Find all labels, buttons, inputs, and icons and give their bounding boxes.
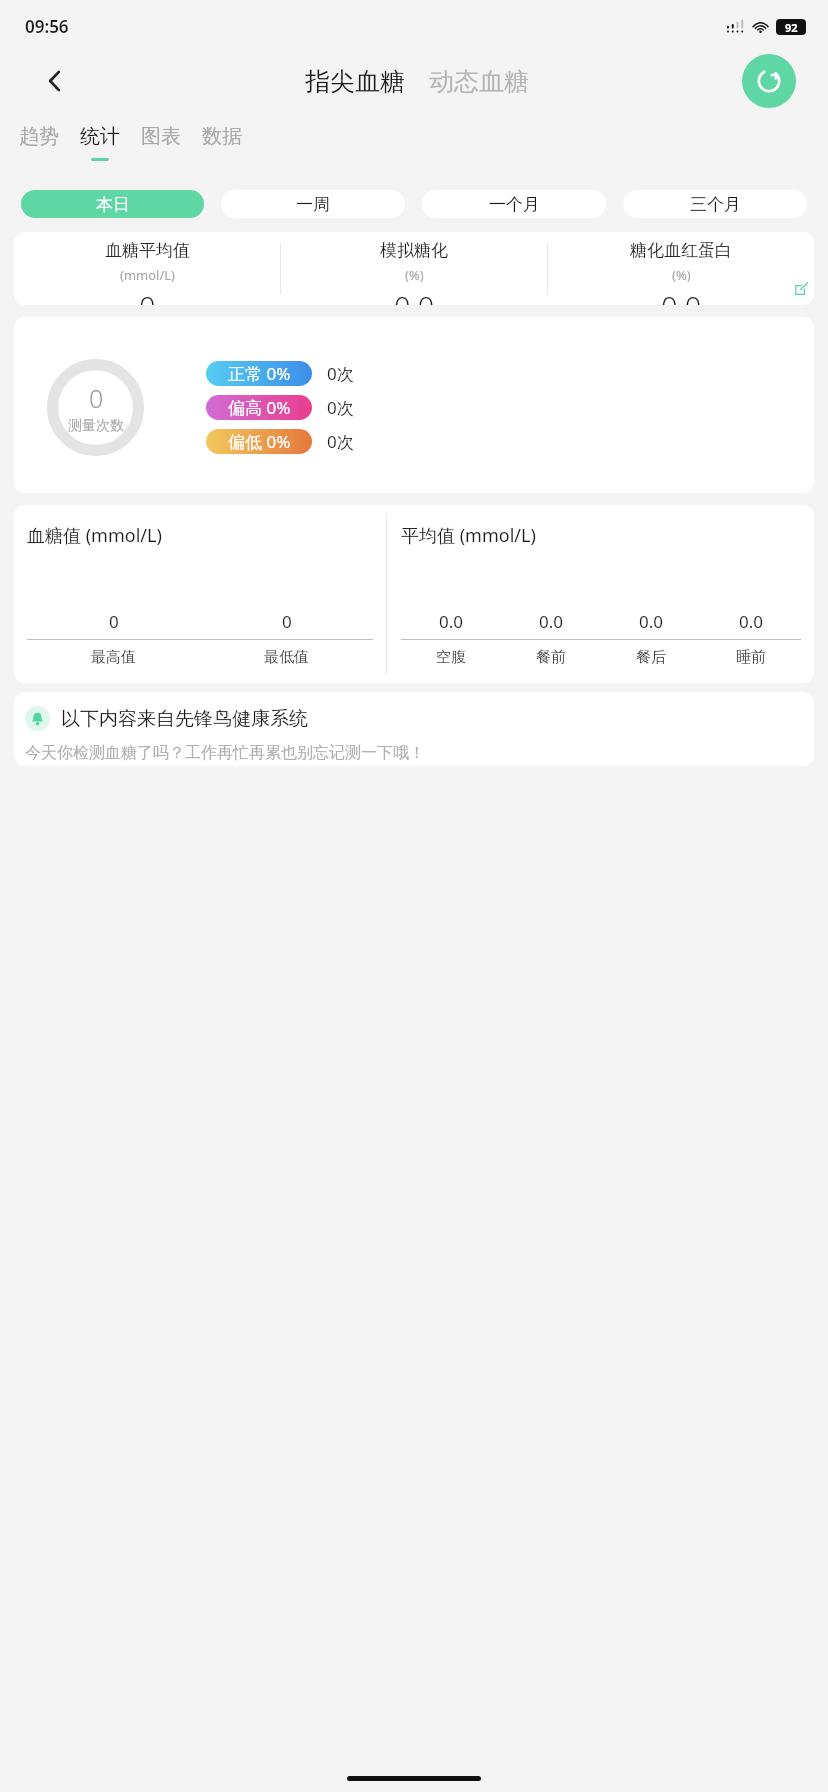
staticText: 空腹 xyxy=(436,648,466,667)
staticText: 0 xyxy=(89,381,104,415)
staticText: (%) xyxy=(672,266,691,284)
button[interactable]: 数据 xyxy=(186,118,258,176)
staticText: 0次 xyxy=(327,430,354,453)
staticText: 最低值 xyxy=(264,648,309,667)
button[interactable]: 趋势 xyxy=(3,118,75,176)
button[interactable]: 一周 xyxy=(221,190,405,218)
staticText: 一周 xyxy=(296,194,330,215)
button[interactable]: 偏低 0% xyxy=(206,429,312,454)
staticText: 平均值 (mmol/L) xyxy=(401,523,536,548)
button[interactable]: Edit xyxy=(792,279,810,297)
staticText: 血糖平均值 xyxy=(105,240,190,261)
staticText: 0.0 xyxy=(394,287,435,305)
button[interactable]: 一个月 xyxy=(422,190,606,218)
button[interactable]: 图表 xyxy=(125,118,197,176)
staticText: 动态血糖 xyxy=(429,66,529,97)
button[interactable]: 指尖血糖 xyxy=(305,66,405,97)
staticText: 0 xyxy=(139,287,156,305)
staticText: 92 xyxy=(785,20,798,35)
staticText: 三个月 xyxy=(690,194,741,215)
staticText: 正常 0% xyxy=(228,362,291,385)
staticText: 统计 xyxy=(80,124,120,149)
staticText: 数据 xyxy=(202,124,242,149)
staticText: 0.0 xyxy=(661,287,702,305)
staticText: 0 xyxy=(282,610,292,633)
staticText: 偏高 0% xyxy=(228,396,291,419)
staticText: 本日 xyxy=(96,194,130,215)
staticText: 指尖血糖 xyxy=(305,66,405,97)
button[interactable]: 动态血糖 xyxy=(429,66,529,97)
staticText: 0次 xyxy=(327,396,354,419)
staticText: 0.0 xyxy=(439,610,464,633)
staticText: 餐前 xyxy=(536,648,566,667)
staticText: 一个月 xyxy=(489,194,540,215)
staticText: 模拟糖化 xyxy=(380,240,448,261)
staticText: 0 xyxy=(109,610,119,633)
staticText: 以下内容来自先锋鸟健康系统 xyxy=(61,707,308,731)
button[interactable]: 正常 0% xyxy=(206,361,312,386)
button[interactable]: 本日 xyxy=(21,190,204,218)
staticText: 最高值 xyxy=(91,648,136,667)
staticText: (%) xyxy=(405,266,424,284)
button[interactable]: 三个月 xyxy=(623,190,807,218)
staticText: (mmol/L) xyxy=(120,266,175,284)
staticText: 0.0 xyxy=(739,610,764,633)
button[interactable]: Back xyxy=(32,58,78,104)
staticText: 餐后 xyxy=(636,648,666,667)
button[interactable]: 统计 xyxy=(64,118,136,176)
button[interactable]: 偏高 0% xyxy=(206,395,312,420)
staticText: 糖化血红蛋白 xyxy=(630,240,732,261)
staticText: 图表 xyxy=(141,124,181,149)
staticText: 睡前 xyxy=(736,648,766,667)
staticText: 血糖值 (mmol/L) xyxy=(27,523,162,548)
staticText: 测量次数 xyxy=(68,417,124,435)
staticText: 偏低 0% xyxy=(228,430,291,453)
button[interactable]: Refresh xyxy=(742,54,796,108)
staticText: 0次 xyxy=(327,362,354,385)
staticText: 今天你检测血糖了吗？工作再忙再累也别忘记测一下哦！ xyxy=(25,743,425,763)
staticText: 趋势 xyxy=(19,124,59,149)
staticText: 0.0 xyxy=(539,610,564,633)
staticText: 0.0 xyxy=(639,610,664,633)
staticText: 09:56 xyxy=(25,15,69,38)
